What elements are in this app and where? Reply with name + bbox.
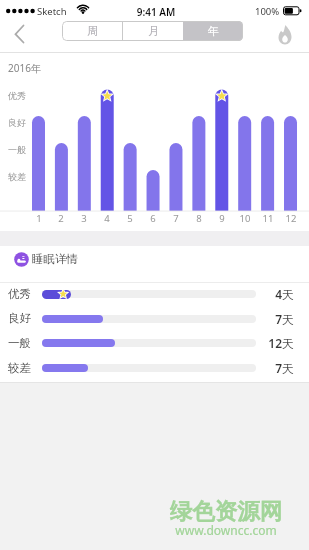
staticText: 优秀 [8,287,31,301]
button[interactable] [6,22,34,50]
staticText: 良好 [8,311,31,325]
staticText: 4天 [256,286,294,302]
staticText: 较差 [8,171,26,182]
staticText: 2 [52,212,70,225]
staticText: 绿色资源网 [166,497,286,525]
staticText: 12 [282,212,300,225]
staticText: 一般 [8,144,26,155]
button[interactable] [0,282,309,307]
button[interactable]: 年 [183,21,243,41]
button[interactable] [0,306,309,331]
staticText: 3 [75,212,93,225]
staticText: Sketch [37,5,67,18]
staticText: 100% [255,5,280,18]
staticText: 月 [148,24,159,38]
staticText: 8 [190,212,208,225]
button[interactable] [0,331,309,356]
staticText: 4 [98,212,116,225]
staticText: 12天 [256,335,294,351]
staticText: 6 [144,212,162,225]
staticText: 周 [87,24,98,38]
button[interactable] [0,356,309,381]
staticText: 良好 [8,117,26,128]
staticText: 10 [236,212,254,225]
button[interactable] [272,23,298,49]
staticText: 睡眠详情 [32,252,78,266]
staticText: 7天 [256,360,294,376]
staticText: 5 [121,212,139,225]
staticText: www.downcc.com [166,522,286,538]
staticText: 一般 [8,336,31,350]
button[interactable]: 周 [62,21,122,41]
staticText: 1 [30,212,48,225]
button[interactable]: 月 [123,21,183,41]
staticText: 7天 [256,311,294,327]
staticText: 较差 [8,361,31,375]
staticText: 年 [208,24,219,38]
staticText: 7 [167,212,185,225]
staticText: 2016年 [8,61,41,75]
staticText: 优秀 [8,90,26,101]
staticText: 9:41 AM [126,5,186,19]
staticText: 11 [259,212,277,225]
staticText: 9 [213,212,231,225]
